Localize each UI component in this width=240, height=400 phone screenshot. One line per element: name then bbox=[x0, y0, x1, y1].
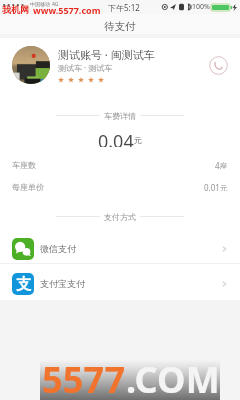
staticText: 微信支付 bbox=[40, 243, 76, 254]
button[interactable]: 支 bbox=[0, 272, 240, 295]
staticText: 我机网 bbox=[2, 4, 29, 15]
staticText: 支付宝支付 bbox=[40, 278, 85, 289]
staticText: 测试账号 · 闽测试车 bbox=[58, 47, 155, 62]
staticText: www.5577.com bbox=[33, 4, 101, 16]
staticText: 下午5:12 bbox=[108, 2, 140, 13]
staticText: 每座单价 bbox=[12, 182, 44, 191]
staticText: 支 bbox=[16, 275, 31, 294]
staticText: 支付方式 bbox=[104, 212, 136, 221]
staticText: 元 bbox=[134, 135, 142, 145]
staticText: 0.04 bbox=[98, 129, 134, 147]
button[interactable]: 微信支付 bbox=[0, 237, 240, 260]
staticText: 车座数 bbox=[12, 160, 36, 169]
staticText: 车费详情 bbox=[104, 111, 136, 120]
staticText: 0.01元 bbox=[204, 182, 228, 191]
staticText: 100% bbox=[192, 2, 210, 12]
staticText: 4座 bbox=[215, 160, 228, 169]
button[interactable]: Call driver bbox=[209, 56, 228, 75]
staticText: 中国移动 bbox=[30, 1, 50, 7]
staticText: .COM bbox=[126, 355, 220, 396]
staticText: 测试车 · 测试车 bbox=[58, 62, 113, 73]
staticText: 5577 bbox=[42, 355, 126, 396]
staticText: 4G bbox=[52, 1, 59, 8]
staticText: 待支付 bbox=[104, 20, 136, 33]
